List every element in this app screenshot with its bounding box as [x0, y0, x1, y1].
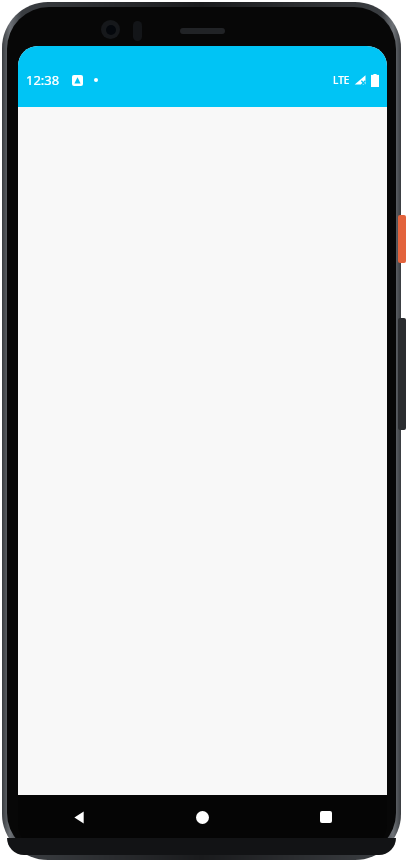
staticText: LTE [333, 73, 350, 87]
button[interactable]: Recent apps [264, 795, 387, 839]
button[interactable]: Volume [398, 318, 406, 430]
button[interactable]: Back [18, 795, 141, 839]
button[interactable]: Power [398, 215, 406, 263]
staticText: 12:38 [26, 71, 60, 89]
button[interactable]: Home [141, 795, 264, 839]
